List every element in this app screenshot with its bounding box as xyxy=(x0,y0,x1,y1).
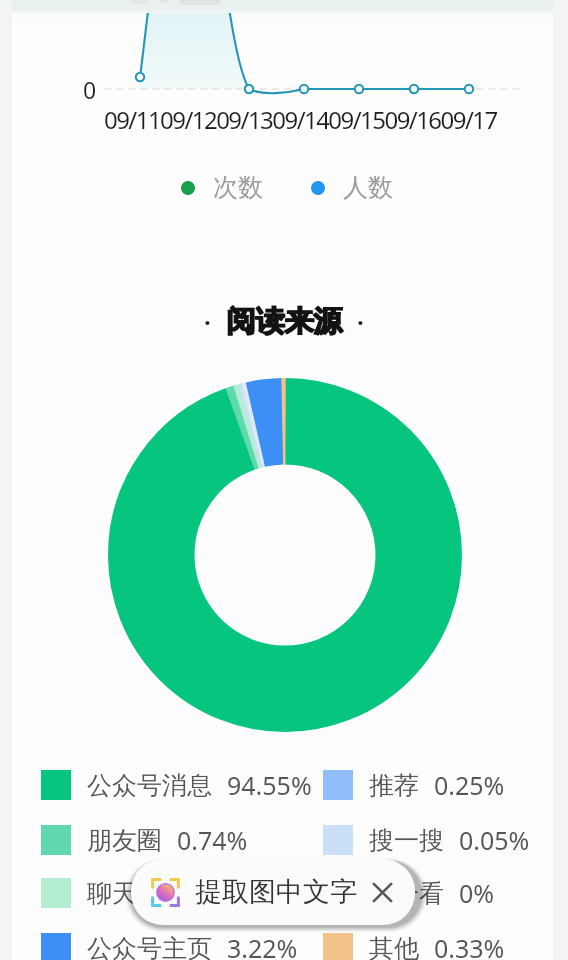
staticText: 公众号消息 xyxy=(87,770,212,801)
staticText: 看一看 xyxy=(369,878,444,909)
button[interactable]: 其他 xyxy=(323,931,505,960)
staticText: 0 xyxy=(83,74,97,105)
staticText: 0% xyxy=(459,876,495,910)
staticText: 次数 xyxy=(213,172,263,203)
other: Scan text xyxy=(151,878,180,907)
other: Close xyxy=(373,883,392,902)
staticText: 推荐 xyxy=(369,770,419,801)
staticText: 09/1109/1209/1309/1409/1509/1609/17 xyxy=(104,103,497,136)
staticText: 搜一搜 xyxy=(369,825,444,856)
button[interactable]: 公众号消息 xyxy=(41,768,312,802)
staticText: 0.33% xyxy=(434,931,505,960)
staticText: 公众号主页 xyxy=(87,933,212,960)
staticText: 其他 xyxy=(369,933,419,960)
staticText: 3.22% xyxy=(227,931,298,960)
staticText: 人数 xyxy=(343,172,393,203)
staticText: 阅读来源 xyxy=(227,303,343,340)
button[interactable]: 朋友圈 xyxy=(41,823,248,857)
button[interactable]: 看一看 xyxy=(323,876,495,910)
staticText: 聊天 xyxy=(87,878,137,909)
staticText: 94.55% xyxy=(227,768,312,802)
staticText: 朋友圈 xyxy=(87,825,162,856)
button[interactable]: 人数 xyxy=(311,172,393,203)
button[interactable]: Scan text xyxy=(131,859,415,925)
staticText: 提取图中文字 xyxy=(195,875,357,909)
button[interactable]: 搜一搜 xyxy=(323,823,530,857)
staticText: · xyxy=(204,305,211,338)
button[interactable]: 推荐 xyxy=(323,768,505,802)
staticText: 0.11% xyxy=(152,876,223,910)
button[interactable]: 次数 xyxy=(181,172,263,203)
staticText: · xyxy=(357,305,364,338)
button[interactable]: 聊天 xyxy=(41,876,223,910)
button[interactable]: 公众号主页 xyxy=(41,931,298,960)
staticText: 0.05% xyxy=(459,823,530,857)
staticText: 0.25% xyxy=(434,768,505,802)
staticText: 阅读来源 xyxy=(226,303,342,340)
staticText: 0.74% xyxy=(177,823,248,857)
